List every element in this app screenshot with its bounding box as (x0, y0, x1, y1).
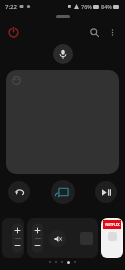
button[interactable]: Play pause (95, 181, 117, 203)
staticText: NETFLIX (105, 222, 120, 227)
staticText: 7:22 (5, 3, 17, 11)
staticText: 76% (81, 3, 92, 10)
button[interactable]: Help (11, 75, 22, 86)
button[interactable]: Back (8, 181, 30, 203)
button[interactable]: Mute (49, 230, 66, 247)
button[interactable]: Volume up (34, 227, 41, 234)
button[interactable]: Volume down (34, 242, 41, 249)
button[interactable]: Volume down (14, 242, 21, 249)
button[interactable]: Touchpad (6, 70, 119, 174)
button[interactable]: Voice search (53, 44, 73, 64)
staticText: 84% (101, 3, 112, 10)
button[interactable]: Volume controls (27, 218, 98, 258)
button[interactable]: Home (51, 180, 75, 204)
button[interactable]: More options (105, 25, 119, 39)
button[interactable]: Netflix (101, 218, 123, 258)
button[interactable]: Volume up (14, 227, 21, 234)
button[interactable]: Power (6, 25, 20, 39)
button[interactable]: Search (87, 25, 101, 39)
button[interactable]: Previous device (2, 218, 24, 258)
